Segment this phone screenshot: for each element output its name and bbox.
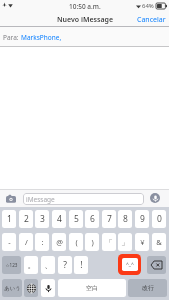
staticText: ^_^ xyxy=(126,261,134,268)
staticText: : xyxy=(41,237,44,247)
staticText: ! xyxy=(80,259,83,271)
button[interactable]: : xyxy=(35,233,49,251)
button[interactable]: 2 xyxy=(19,210,33,228)
button[interactable]: @ xyxy=(52,233,66,251)
button[interactable]: iMessage xyxy=(23,193,144,205)
button[interactable]: 9 xyxy=(135,210,149,228)
button[interactable]: Cancelar xyxy=(137,15,166,25)
button[interactable]: ? xyxy=(58,256,72,274)
staticText: MarksPhone, xyxy=(21,33,62,42)
button[interactable]: ☆123 xyxy=(2,256,21,274)
staticText: @ xyxy=(56,237,63,247)
button[interactable]: 4 xyxy=(52,210,66,228)
button[interactable]: & xyxy=(152,233,166,251)
button[interactable]: ¥ xyxy=(135,233,149,251)
button[interactable]: 改行 xyxy=(128,279,167,297)
staticText: - xyxy=(8,237,11,247)
staticText: Cancelar xyxy=(137,15,166,25)
staticText: 9 xyxy=(140,213,145,225)
button[interactable]: Delete xyxy=(147,256,166,274)
button[interactable]: / xyxy=(19,233,33,251)
staticText: 2 xyxy=(24,213,29,225)
staticText: 改行 xyxy=(142,284,154,292)
button[interactable]: 」 xyxy=(118,233,132,251)
staticText: 8 xyxy=(123,213,128,225)
staticText: 、 xyxy=(44,260,53,271)
staticText: 。 xyxy=(27,260,36,271)
staticText: & xyxy=(156,237,162,247)
button[interactable]: 7 xyxy=(102,210,116,228)
button[interactable]: - xyxy=(2,233,16,251)
staticText: iMessage xyxy=(26,195,55,204)
staticText: ☆123 xyxy=(5,262,18,268)
other: Dictate xyxy=(44,284,53,293)
button[interactable]: ! xyxy=(74,256,88,274)
button[interactable]: Take photo xyxy=(4,193,18,204)
button[interactable]: 3 xyxy=(35,210,49,228)
button[interactable]: 。 xyxy=(24,256,38,274)
staticText: / xyxy=(25,237,28,247)
staticText: 6 xyxy=(90,213,95,225)
staticText: あいう xyxy=(4,285,21,292)
staticText: ( xyxy=(75,237,78,247)
button[interactable]: 5 xyxy=(69,210,83,228)
button[interactable]: 0 xyxy=(152,210,166,228)
staticText: 4 xyxy=(57,213,62,225)
staticText: 3 xyxy=(40,213,45,225)
button[interactable]: ( xyxy=(69,233,83,251)
staticText: 5 xyxy=(74,213,79,225)
staticText: 空白 xyxy=(86,284,98,292)
staticText: 「 xyxy=(105,238,113,247)
button[interactable]: 空白 xyxy=(58,279,126,297)
staticText: Nuevo iMessage xyxy=(57,15,113,25)
button[interactable]: 6 xyxy=(85,210,99,228)
button[interactable]: 、 xyxy=(41,256,55,274)
button[interactable]: あいう xyxy=(2,279,22,297)
staticText: Para: xyxy=(3,33,21,42)
other: Switch keyboard xyxy=(27,284,36,293)
staticText: 1 xyxy=(7,213,12,225)
button[interactable]: 8 xyxy=(118,210,132,228)
button[interactable]: 「 xyxy=(102,233,116,251)
button[interactable]: ^_^ xyxy=(122,258,138,271)
button[interactable]: Record audio message xyxy=(150,193,160,203)
staticText: 0 xyxy=(157,213,162,225)
button[interactable]: Dictate xyxy=(41,279,55,297)
button[interactable]: Switch keyboard xyxy=(24,279,38,297)
staticText: ? xyxy=(63,259,67,271)
staticText: 」 xyxy=(121,238,129,247)
staticText: 7 xyxy=(107,213,112,225)
staticText: 10:50 a.m. xyxy=(69,2,101,11)
button[interactable]: 1 xyxy=(2,210,16,228)
other: Delete xyxy=(151,261,162,269)
staticText: 64% xyxy=(142,2,154,10)
staticText: ¥ xyxy=(140,237,145,247)
button[interactable]: ) xyxy=(85,233,99,251)
staticText: ) xyxy=(91,237,94,247)
